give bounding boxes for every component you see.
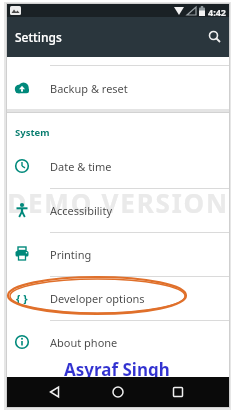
staticText: { } [16, 291, 28, 306]
button[interactable] [155, 377, 229, 407]
button[interactable] [7, 377, 81, 407]
staticText: Backup & reset [50, 81, 128, 96]
staticText: Date & time [50, 159, 112, 174]
button[interactable]: Accessibility [7, 188, 229, 232]
button[interactable]: About phone [7, 320, 229, 364]
staticText: 4:42 [208, 6, 226, 18]
staticText: System [15, 126, 50, 139]
staticText: Developer options [50, 291, 145, 306]
button[interactable]: Date & time [7, 144, 229, 188]
button[interactable] [207, 29, 223, 45]
button[interactable]: { } [7, 276, 229, 320]
staticText: Printing [50, 247, 92, 262]
staticText: About phone [50, 335, 118, 350]
staticText: Asyraf Singh [64, 358, 170, 381]
button[interactable]: Backup & reset [7, 66, 229, 110]
staticText: DEMO VERSION [0, 185, 237, 220]
staticText: Settings [15, 29, 62, 45]
button[interactable]: Printing [7, 232, 229, 276]
button[interactable] [81, 377, 155, 407]
staticText: Accessibility [50, 203, 113, 218]
